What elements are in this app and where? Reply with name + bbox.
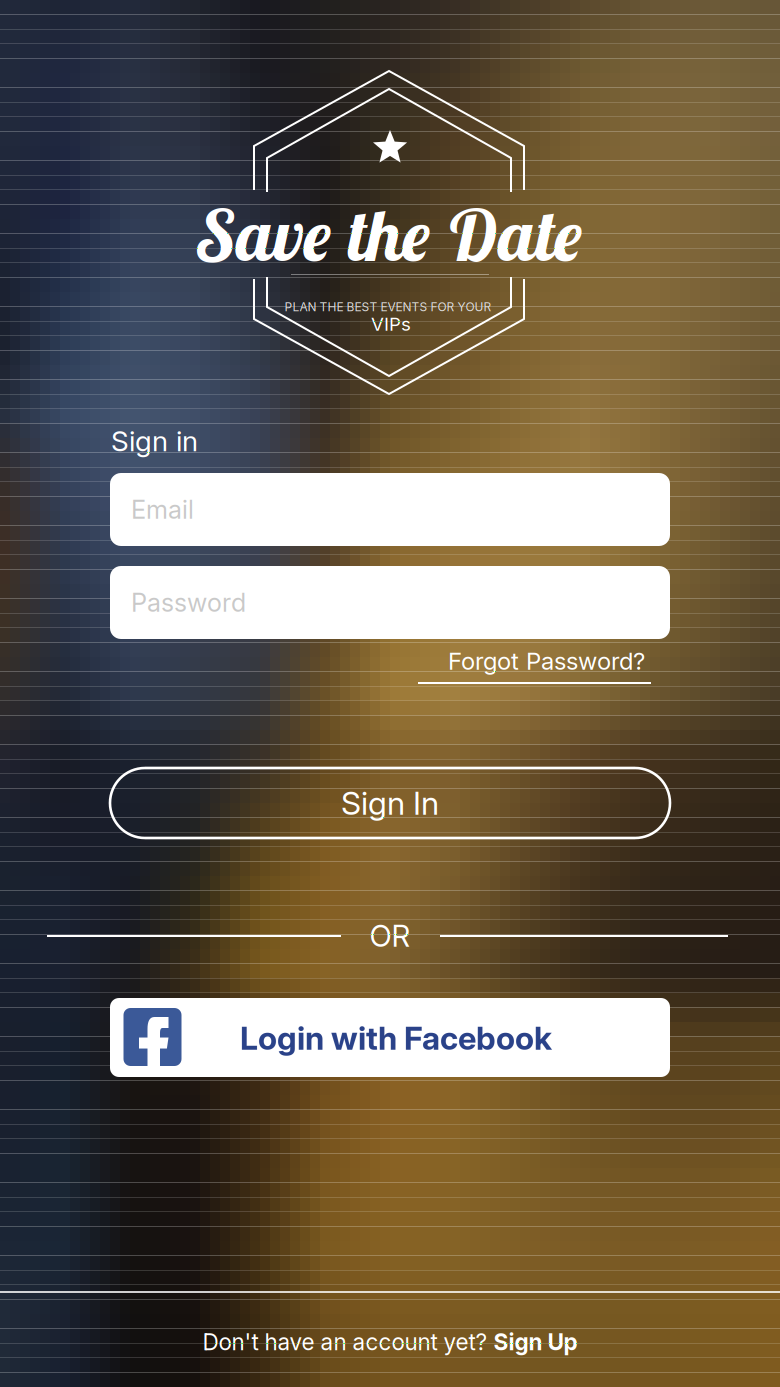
button[interactable]: Password bbox=[110, 566, 670, 639]
staticText: Forgot Password? bbox=[448, 646, 645, 675]
staticText: Don't have an account yet? bbox=[202, 1328, 493, 1356]
button[interactable]: Forgot Password? bbox=[418, 642, 651, 688]
staticText: Sign Up bbox=[493, 1328, 577, 1356]
button[interactable]: Login with Facebook bbox=[110, 998, 670, 1077]
staticText: Password bbox=[131, 587, 246, 618]
staticText: Sign In bbox=[341, 784, 439, 822]
staticText: Email bbox=[131, 494, 194, 525]
staticText: Save the Date bbox=[197, 189, 583, 279]
button[interactable]: Sign Up bbox=[493, 1328, 577, 1356]
staticText: PLAN THE BEST EVENTS FOR YOUR bbox=[284, 300, 491, 314]
button[interactable]: Sign In bbox=[110, 768, 670, 838]
staticText: VIPs bbox=[371, 313, 411, 335]
staticText: Login with Facebook bbox=[240, 1019, 552, 1057]
button[interactable]: Email bbox=[110, 473, 670, 546]
staticText: Sign in bbox=[111, 424, 198, 458]
staticText: OR bbox=[369, 918, 410, 954]
